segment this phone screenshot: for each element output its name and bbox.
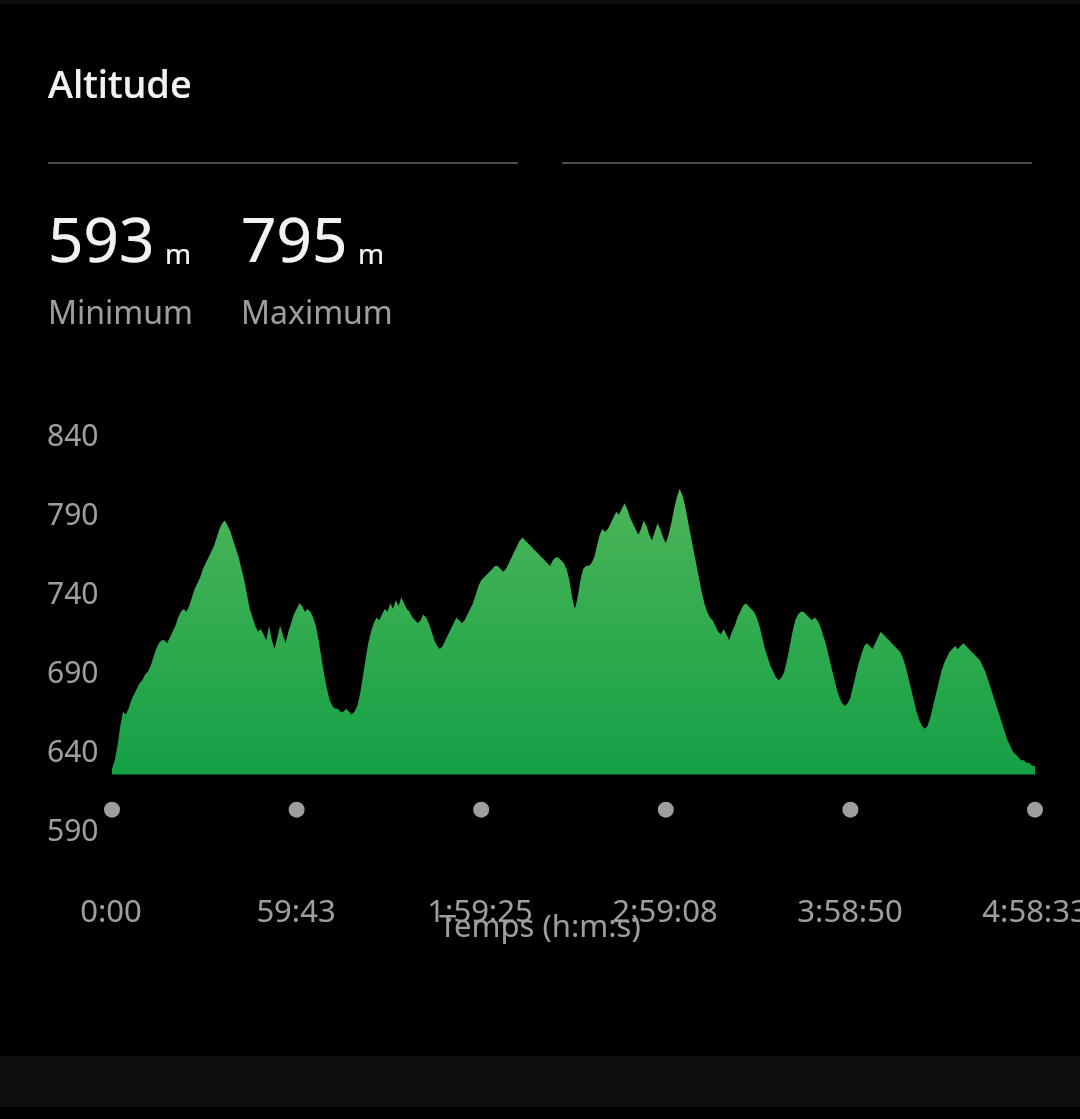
staticText: 1:59:25 — [405, 889, 555, 931]
staticText: m — [165, 234, 192, 272]
staticText: 840 — [47, 414, 99, 455]
staticText: Minimum — [48, 290, 193, 334]
button[interactable]: 593 — [48, 196, 193, 334]
staticText: Altitude — [48, 57, 192, 109]
staticText: 690 — [47, 651, 99, 692]
button[interactable]: 795 — [241, 196, 393, 334]
staticText: 790 — [47, 493, 99, 534]
staticText: 2:59:08 — [590, 889, 740, 931]
staticText: 640 — [47, 730, 99, 771]
button[interactable]: Altitude profile chart — [0, 402, 1080, 894]
staticText: Maximum — [241, 290, 393, 334]
staticText: Temps (h:m:s) — [439, 904, 641, 946]
staticText: 590 — [47, 809, 99, 850]
staticText: 0:00 — [36, 889, 186, 931]
staticText: 3:58:50 — [775, 889, 925, 931]
staticText: 4:58:33 — [960, 889, 1080, 931]
staticText: m — [358, 234, 385, 272]
staticText: 59:43 — [221, 889, 371, 931]
staticText: 593 — [48, 196, 155, 280]
staticText: 740 — [47, 572, 99, 613]
staticText: 795 — [241, 196, 348, 280]
